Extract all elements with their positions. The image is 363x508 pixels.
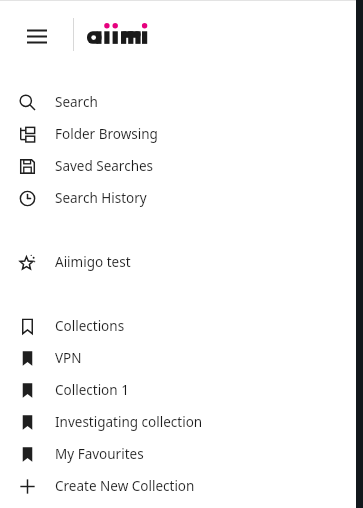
button[interactable]: Saved Searches: [0, 150, 363, 182]
button[interactable]: Search: [0, 86, 363, 118]
staticText: VPN: [55, 349, 82, 367]
staticText: Saved Searches: [55, 157, 154, 175]
staticText: Create New Collection: [55, 477, 195, 495]
button[interactable]: Investigating collection: [0, 406, 363, 438]
staticText: Search History: [55, 189, 147, 207]
staticText: Folder Browsing: [55, 125, 158, 143]
staticText: Investigating collection: [55, 413, 203, 431]
button[interactable]: Collections: [0, 310, 363, 342]
staticText: Collections: [55, 317, 125, 335]
button[interactable]: Collection 1: [0, 374, 363, 406]
button[interactable]: Folder Browsing: [0, 118, 363, 150]
staticText: Aiimigo test: [55, 253, 131, 271]
button[interactable]: Create New Collection: [0, 470, 363, 502]
button[interactable]: Menu: [21, 20, 53, 52]
button[interactable]: aiimi home: [87, 17, 149, 51]
staticText: Search: [55, 93, 98, 111]
button[interactable]: My Favourites: [0, 438, 363, 470]
staticText: Collection 1: [55, 381, 129, 399]
button[interactable]: VPN: [0, 342, 363, 374]
staticText: My Favourites: [55, 445, 144, 463]
button[interactable]: Search History: [0, 182, 363, 214]
button[interactable]: Aiimigo test: [0, 246, 363, 278]
